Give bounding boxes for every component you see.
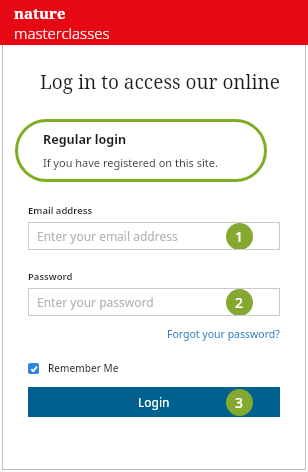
staticText: masterclasses (14, 23, 110, 43)
staticText: 2 (235, 293, 244, 312)
button[interactable]: Forgot your password? (167, 327, 280, 341)
button[interactable]: Login (28, 387, 280, 417)
staticText: Log in to access our online (40, 69, 280, 95)
staticText: Enter your password (37, 294, 154, 310)
staticText: Login (138, 394, 170, 410)
staticText: Email address (28, 204, 93, 217)
staticText: If you have registered on this site. (43, 155, 218, 170)
staticText: Password (28, 270, 73, 283)
staticText: nature (14, 3, 66, 23)
staticText: 1 (235, 227, 244, 246)
other: Remember Me checkbox (28, 363, 39, 374)
staticText: Remember Me (48, 361, 119, 375)
staticText: Regular login (43, 131, 127, 148)
staticText: Enter your email address (37, 228, 178, 244)
staticText: 3 (235, 393, 244, 412)
button[interactable]: Enter your password (28, 288, 280, 316)
button[interactable]: Remember Me checkbox (28, 361, 119, 375)
button[interactable]: Enter your email address (28, 222, 280, 250)
